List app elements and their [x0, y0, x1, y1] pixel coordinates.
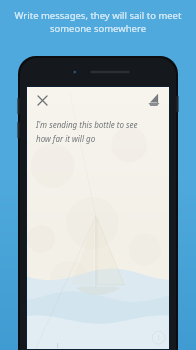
staticText: Write messages, they will sail to meet s… [10, 9, 186, 35]
button[interactable]: Send [143, 89, 165, 111]
button[interactable]: I'm sending this bottle to see [36, 119, 160, 144]
staticText: I'm sending this bottle to see [36, 119, 138, 130]
button[interactable]: Close [31, 89, 53, 111]
staticText: how far it will go [36, 133, 96, 144]
